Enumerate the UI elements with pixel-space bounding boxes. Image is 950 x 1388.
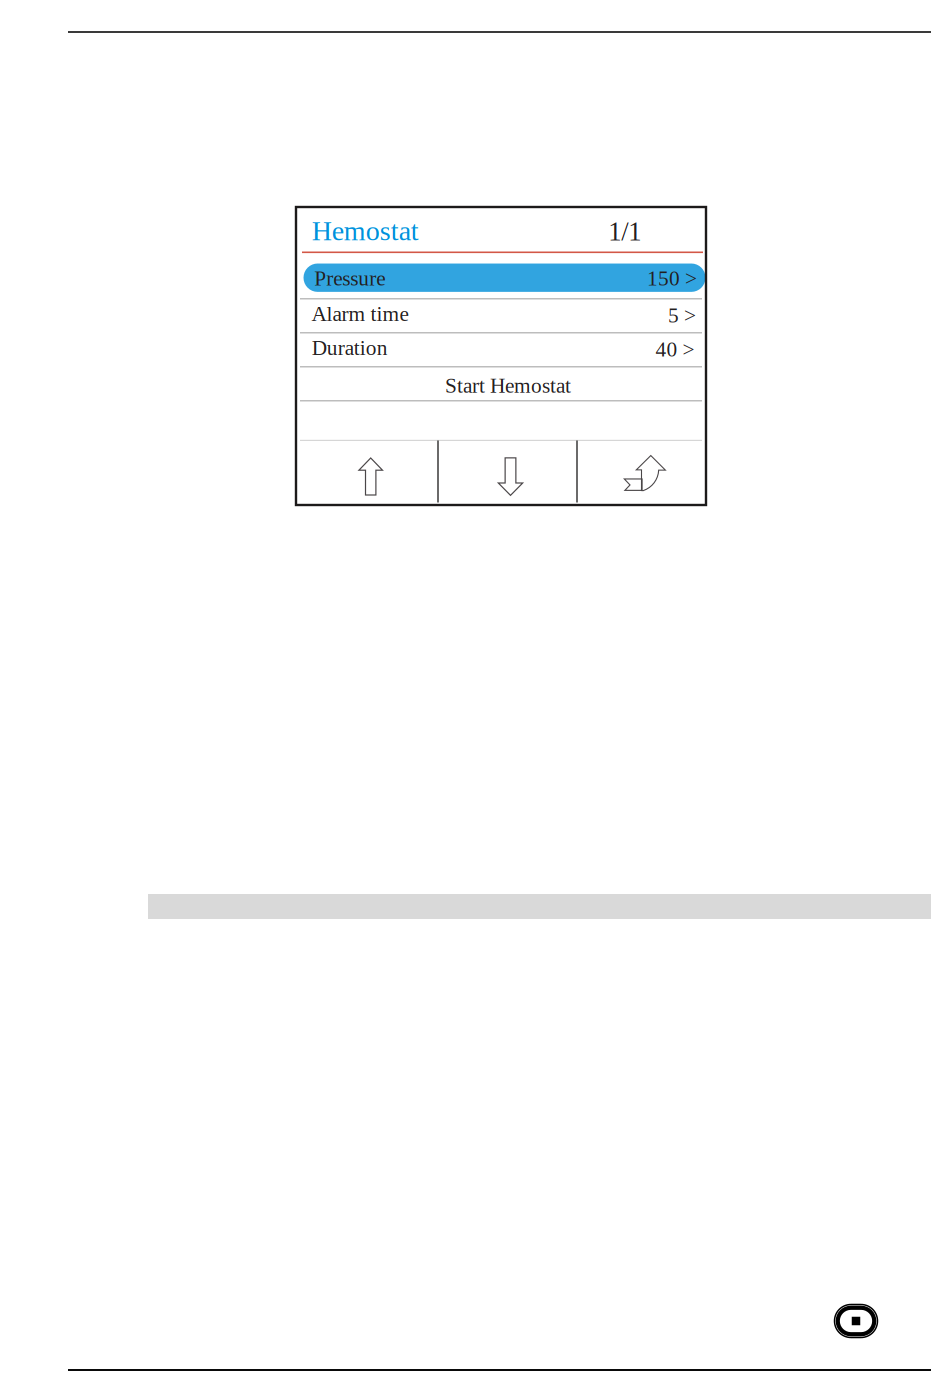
button[interactable]: Scroll down [439, 440, 577, 502]
button[interactable]: Enter [577, 440, 703, 502]
staticText: Start Hemostat [445, 374, 571, 397]
button[interactable]: Pressure [299, 252, 703, 299]
staticText: 40 > [656, 337, 695, 361]
staticText: 150 > [647, 266, 697, 290]
button[interactable]: Duration [299, 333, 703, 367]
staticText: 5 > [668, 303, 696, 327]
staticText: Hemostat [312, 215, 419, 246]
button[interactable]: Start Hemostat [299, 367, 703, 401]
staticText: Pressure [314, 266, 385, 290]
staticText: 1/1 [608, 217, 641, 246]
button[interactable]: Scroll up [299, 440, 439, 502]
staticText: Alarm time [311, 302, 408, 326]
button[interactable]: Alarm time [299, 299, 703, 333]
staticText: Duration [312, 336, 388, 359]
